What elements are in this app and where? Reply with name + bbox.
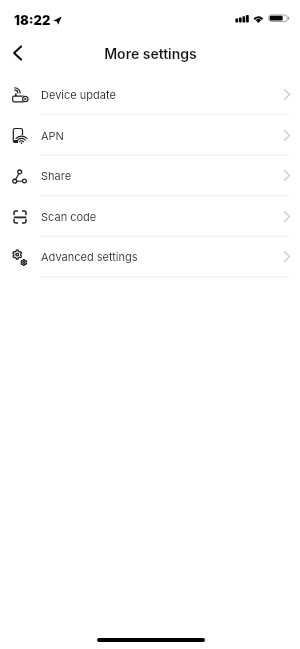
button[interactable]: Scan code	[0, 196, 300, 237]
button[interactable]: Advanced settings	[0, 236, 300, 277]
button[interactable]: Back	[0, 33, 37, 73]
staticText: Advanced settings	[41, 250, 285, 263]
staticText: APN	[41, 129, 285, 142]
staticText: Share	[41, 169, 285, 182]
staticText: Device update	[41, 88, 285, 101]
staticText: Scan code	[41, 210, 285, 223]
button[interactable]: Share	[0, 155, 300, 196]
staticText: 18:22	[14, 12, 51, 28]
button[interactable]: APN	[0, 115, 300, 156]
button[interactable]: Device update	[0, 74, 300, 115]
staticText: More settings	[104, 45, 197, 62]
